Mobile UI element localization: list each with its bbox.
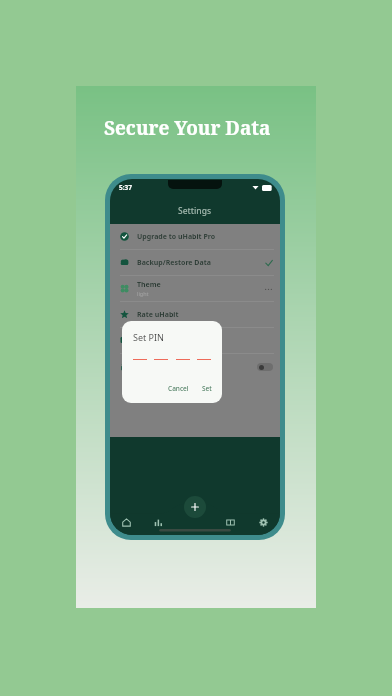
button[interactable]: Statistics (142, 511, 175, 533)
staticText: Backup/Restore Data (137, 258, 211, 268)
button[interactable]: Add habit (184, 496, 206, 518)
staticText: Upgrade to uHabit Pro (137, 232, 216, 242)
staticText: Settings (178, 205, 212, 217)
button[interactable]: Enable PIN (110, 354, 280, 379)
button[interactable]: Upgrade to uHabit Pro (110, 224, 280, 249)
button[interactable]: Settings (247, 511, 280, 533)
staticText: Cancel (168, 384, 189, 393)
staticText: light (137, 290, 149, 297)
staticText: Rate uHabit (137, 310, 179, 320)
button[interactable]: Send feedback (110, 328, 280, 353)
button[interactable]: Home (110, 511, 142, 533)
staticText: Theme (137, 280, 161, 290)
button[interactable]: Enable PIN (257, 363, 273, 371)
button[interactable]: Theme (110, 276, 280, 301)
staticText: Set (202, 384, 212, 393)
staticText: Send feedback (137, 336, 188, 346)
button[interactable]: Set (199, 382, 215, 395)
button[interactable]: Journal (214, 511, 247, 533)
button[interactable]: Backup/Restore Data (110, 250, 280, 275)
staticText: Secure Your Data (104, 115, 271, 141)
staticText: Set PIN (133, 331, 164, 343)
button[interactable]: Cancel (165, 382, 192, 395)
staticText: 5:37 (119, 183, 132, 192)
button[interactable]: Rate uHabit (110, 302, 280, 327)
